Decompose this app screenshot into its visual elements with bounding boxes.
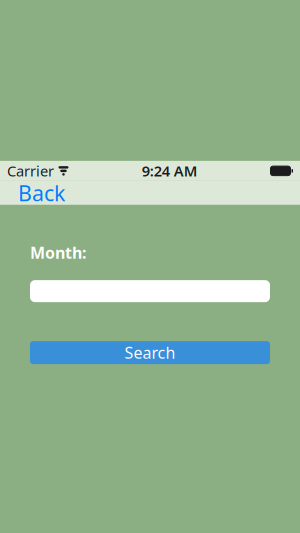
staticText: Month: [30, 242, 86, 263]
staticText: Search [124, 342, 175, 363]
staticText: 9:24 AM [142, 161, 198, 181]
staticText: Carrier [7, 161, 54, 181]
staticText: Back [18, 179, 65, 207]
button[interactable]: Search [30, 341, 270, 364]
button[interactable]: Back [10, 175, 73, 211]
